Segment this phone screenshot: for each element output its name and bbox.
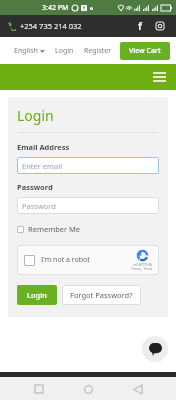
button[interactable]: Enter email [17, 157, 159, 174]
staticText: reCAPTCHA [133, 262, 152, 267]
staticText: Forgot Password? [70, 290, 133, 300]
button[interactable]: Menu [150, 68, 168, 86]
button[interactable]: Back [127, 378, 149, 400]
button[interactable]: Login [17, 285, 57, 305]
staticText: Login [27, 290, 47, 300]
staticText: Password [22, 201, 56, 211]
staticText: English [14, 46, 38, 56]
staticText: Login [17, 106, 54, 125]
button[interactable]: Instagram [153, 19, 167, 33]
button[interactable]: Password [17, 197, 159, 214]
button[interactable]: Register [79, 42, 117, 60]
staticText: Enter email [22, 161, 63, 171]
staticText: f [138, 19, 142, 33]
button[interactable]: View Cart [120, 42, 170, 60]
staticText: +254 735 214 032 [20, 21, 82, 31]
button[interactable]: Facebook [133, 19, 147, 33]
button[interactable]: +254 735 214 032 [7, 19, 82, 33]
button[interactable]: Login [50, 42, 79, 60]
button[interactable]: Remember Me [17, 222, 81, 236]
button[interactable]: Home [77, 378, 99, 400]
staticText: Register [84, 46, 112, 56]
button[interactable]: Recent apps [28, 378, 50, 400]
button[interactable]: Chat [142, 336, 168, 362]
staticText: I'm not a robot [41, 255, 90, 265]
staticText: Remember Me [28, 224, 81, 234]
staticText: Privacy - Terms [131, 267, 153, 271]
button[interactable]: English [9, 42, 50, 60]
staticText: View Cart [129, 46, 161, 56]
staticText: Password [17, 182, 53, 192]
staticText: Login [55, 46, 74, 56]
staticText: Email Address [17, 142, 70, 152]
button[interactable]: Forgot Password? [62, 285, 141, 305]
staticText: f [83, 5, 85, 11]
staticText: 3:42 PM [42, 3, 69, 13]
button[interactable]: I'm not a robot [17, 245, 159, 275]
